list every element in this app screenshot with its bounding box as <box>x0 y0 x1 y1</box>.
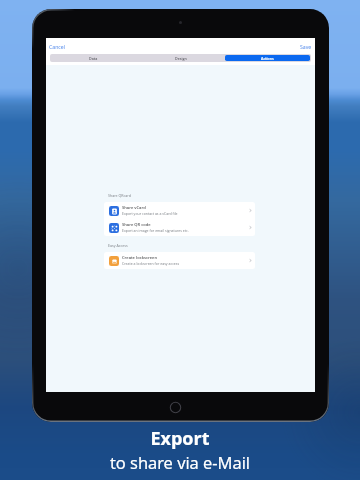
staticText: Actions <box>261 56 274 61</box>
staticText: Save <box>300 43 312 50</box>
button[interactable]: Design <box>138 55 223 61</box>
button[interactable]: Save <box>300 42 312 51</box>
staticText: Design <box>175 56 187 61</box>
staticText: Share QRcard <box>108 193 131 198</box>
staticText: Share QR code <box>122 222 151 228</box>
button[interactable]: Create lockscreen <box>104 252 255 269</box>
staticText: Data <box>89 56 98 61</box>
staticText: Export your contact as a vCard file <box>122 211 178 216</box>
staticText: Export an image for email signatures etc… <box>122 228 189 233</box>
staticText: to share via e-Mail <box>0 451 360 473</box>
staticText: Cancel <box>49 43 66 50</box>
button[interactable]: Cancel <box>49 42 66 51</box>
button[interactable]: Data <box>51 55 136 61</box>
staticText: Create a lockscreen for easy access <box>122 261 180 266</box>
staticText: Easy Access <box>108 243 128 248</box>
button[interactable]: Actions <box>225 55 310 61</box>
staticText: Share vCard <box>122 205 146 211</box>
staticText: Export <box>0 426 360 451</box>
button[interactable]: Share QR code <box>104 219 255 236</box>
staticText: Create lockscreen <box>122 255 158 261</box>
button[interactable]: Share vCard <box>104 202 255 219</box>
